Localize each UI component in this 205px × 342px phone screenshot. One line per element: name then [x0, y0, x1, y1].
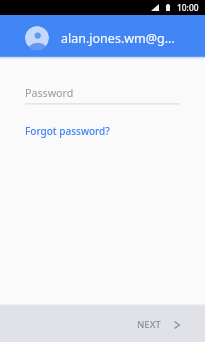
staticText: 10:00 [177, 2, 199, 13]
staticText: Password [25, 86, 74, 101]
button[interactable]: NEXT [125, 312, 205, 337]
other: Account avatar [25, 26, 49, 50]
staticText: NEXT [137, 318, 161, 331]
button[interactable]: Password [0, 86, 205, 105]
button[interactable]: Account avatar [0, 15, 205, 56]
staticText: Forgot password? [25, 124, 110, 138]
staticText: alan.jones.wm@g... [61, 30, 175, 47]
button[interactable]: Forgot password? [25, 124, 110, 138]
